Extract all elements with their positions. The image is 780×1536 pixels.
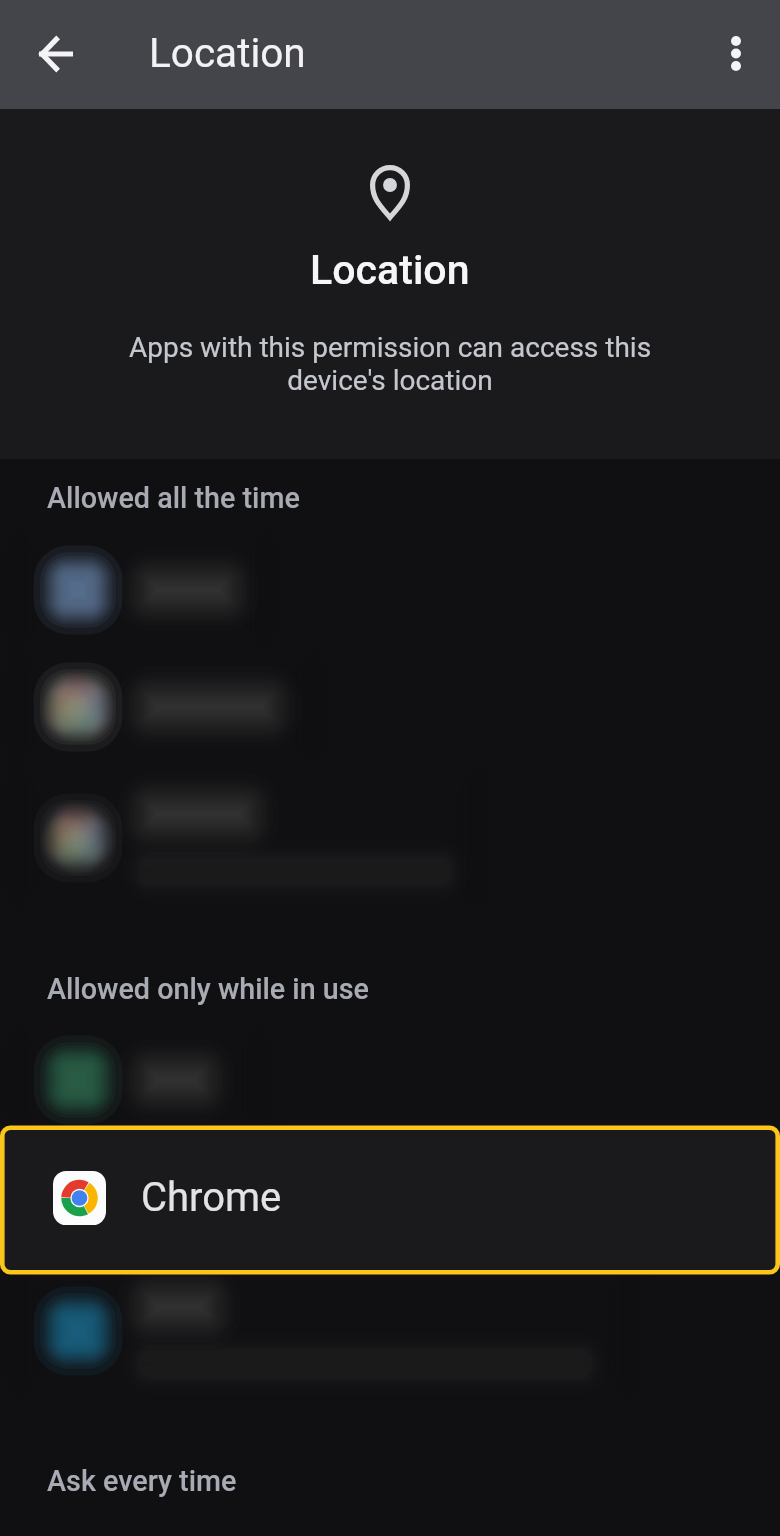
staticText: Location xyxy=(149,29,306,76)
staticText: Apps with this permission can access thi… xyxy=(0,331,780,397)
staticText: Ask every time xyxy=(47,1464,237,1498)
button[interactable]: More options xyxy=(697,15,774,92)
staticText: Chrome xyxy=(141,1174,282,1221)
staticText: Location xyxy=(310,246,470,294)
staticText: Allowed all the time xyxy=(47,481,300,515)
button[interactable]: Chrome xyxy=(0,1125,780,1275)
button[interactable]: Navigate up xyxy=(17,15,94,92)
staticText: Allowed only while in use xyxy=(47,972,369,1006)
